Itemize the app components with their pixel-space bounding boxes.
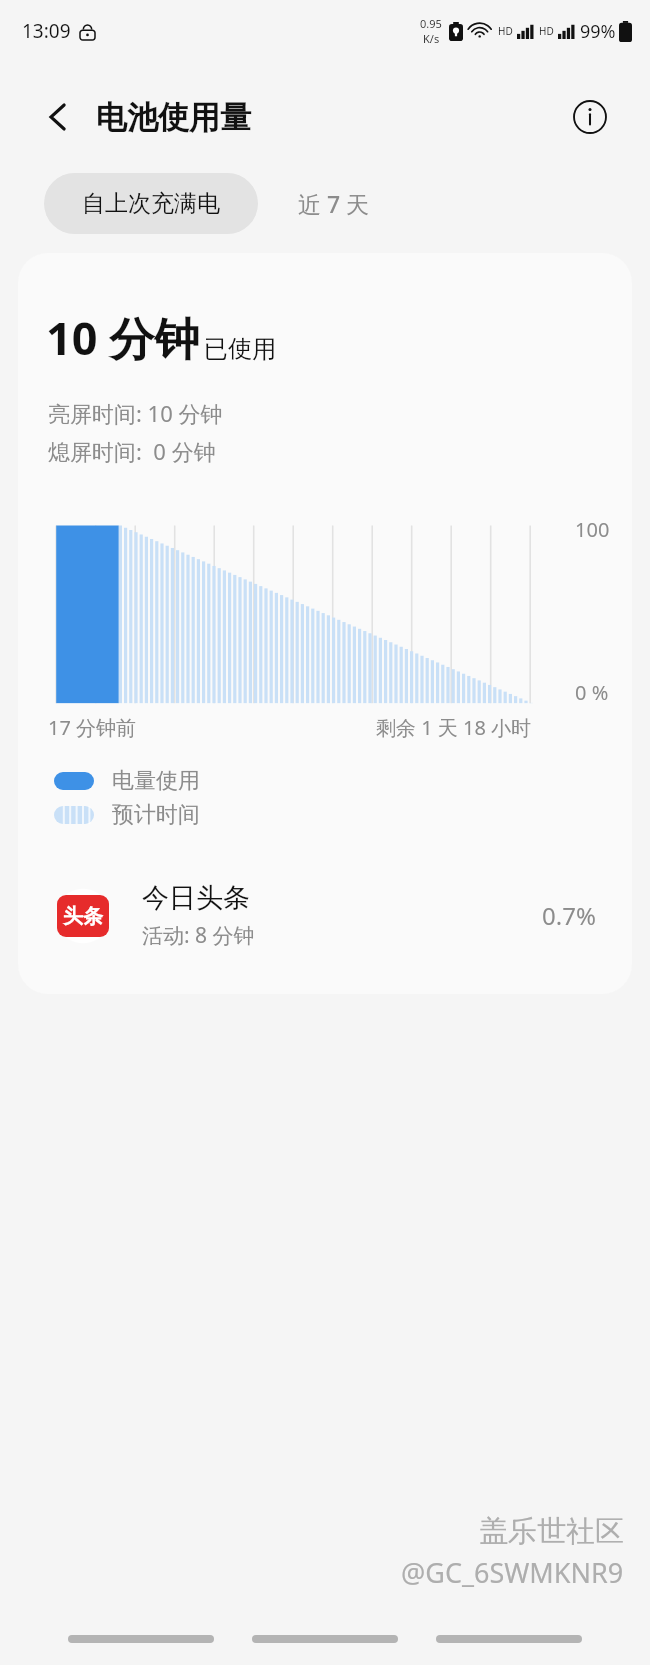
staticText: 头条: [63, 904, 103, 929]
button[interactable]: Back: [436, 1635, 582, 1643]
staticText: 10 分钟: [46, 307, 200, 368]
staticText: 熄屏时间: 0 分钟: [48, 436, 216, 466]
staticText: 100: [575, 516, 610, 543]
button[interactable]: 近 7 天: [258, 172, 410, 235]
staticText: 0.95: [420, 16, 442, 31]
staticText: K/s: [423, 31, 440, 46]
staticText: 0.7%: [542, 899, 596, 932]
button[interactable]: 头条: [18, 873, 632, 958]
button[interactable]: Back: [36, 95, 80, 139]
staticText: 剩余 1 天 18 小时: [376, 714, 532, 741]
button[interactable]: Home: [252, 1635, 398, 1643]
staticText: 已使用: [204, 334, 276, 364]
staticText: HD: [539, 24, 554, 38]
staticText: @GC_6SWMKNR9: [401, 1554, 624, 1591]
staticText: 17 分钟前: [48, 714, 137, 741]
staticText: HD: [498, 24, 513, 38]
staticText: 0 %: [575, 679, 609, 706]
button[interactable]: Recents: [68, 1635, 214, 1643]
button[interactable]: 自上次充满电: [44, 173, 258, 234]
staticText: 活动: 8 分钟: [142, 921, 255, 950]
staticText: 13:09: [22, 18, 71, 44]
staticText: 预计时间: [112, 801, 200, 829]
staticText: 电量使用: [112, 767, 200, 795]
staticText: 今日头条: [142, 881, 250, 915]
staticText: 近 7 天: [298, 188, 370, 219]
staticText: 自上次充满电: [82, 189, 220, 218]
staticText: 盖乐世社区: [479, 1513, 624, 1550]
staticText: 电池使用量: [96, 98, 251, 137]
staticText: 99%: [580, 19, 616, 44]
button[interactable]: Information: [566, 93, 614, 141]
staticText: 亮屏时间: 10 分钟: [48, 398, 223, 428]
